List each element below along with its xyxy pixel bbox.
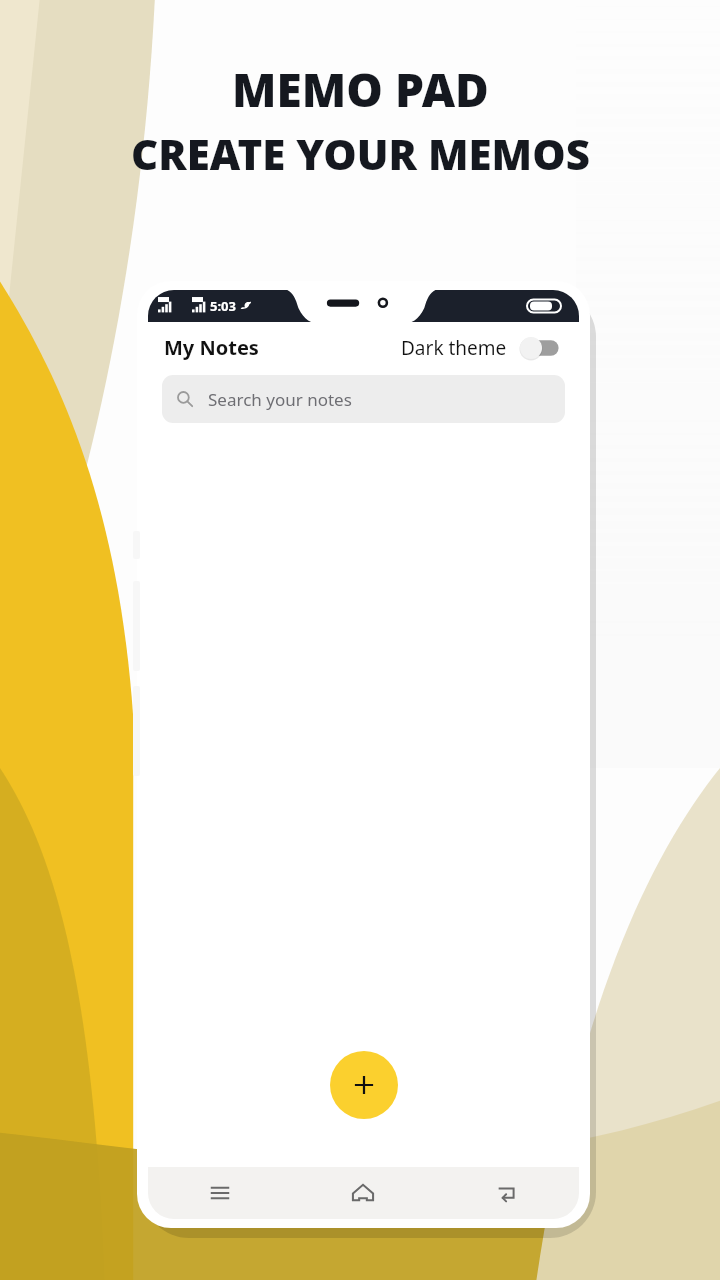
staticText: 5:03 <box>210 297 236 315</box>
button[interactable]: Dark theme toggle <box>519 336 563 360</box>
button[interactable]: Home <box>291 1167 435 1219</box>
staticText: My Notes <box>164 334 259 361</box>
button[interactable]: Add note <box>330 1051 398 1119</box>
staticText: Dark theme <box>401 335 507 361</box>
button[interactable]: Search your notes <box>162 375 565 423</box>
button[interactable]: Recents <box>148 1167 291 1219</box>
staticText: CREATE YOUR MEMOS <box>131 125 590 182</box>
button[interactable]: Back <box>435 1167 579 1219</box>
staticText: MEMO PAD <box>232 58 489 121</box>
staticText: Search your notes <box>208 388 352 411</box>
